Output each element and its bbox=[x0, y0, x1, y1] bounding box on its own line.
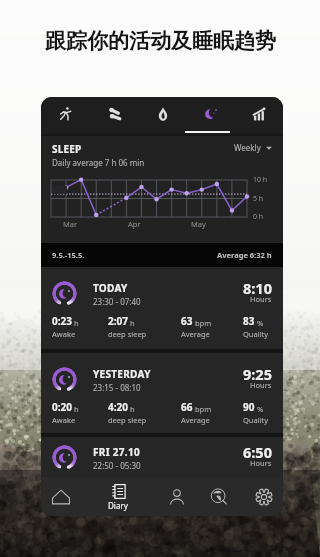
staticText: h bbox=[130, 318, 135, 328]
button[interactable]: Settings bbox=[242, 477, 283, 516]
button[interactable]: Exercise bbox=[90, 97, 139, 134]
staticText: Mar bbox=[63, 219, 78, 229]
staticText: 2:07 bbox=[108, 314, 128, 328]
button[interactable]: Explore bbox=[197, 477, 241, 516]
button[interactable]: YESTERDAY bbox=[41, 353, 283, 433]
staticText: bpm bbox=[195, 318, 212, 328]
staticText: 22:50 - 05:30 bbox=[93, 460, 141, 471]
staticText: Apr bbox=[128, 219, 141, 229]
staticText: 23:15 - 08:10 bbox=[93, 382, 141, 393]
staticText: Quality bbox=[243, 329, 269, 339]
staticText: 9:25 bbox=[243, 364, 272, 384]
staticText: % bbox=[257, 404, 264, 414]
staticText: 66 bbox=[181, 400, 193, 414]
staticText: Diary bbox=[108, 500, 128, 511]
staticText: deep sleep bbox=[108, 329, 147, 339]
staticText: 4:20 bbox=[108, 400, 128, 414]
staticText: 跟踪你的活动及睡眠趋势 bbox=[45, 28, 276, 54]
staticText: 90 bbox=[243, 400, 255, 414]
staticText: 5 h bbox=[253, 194, 264, 204]
button[interactable]: FRI 27.10 bbox=[41, 437, 283, 477]
staticText: h bbox=[130, 404, 135, 414]
button[interactable]: TODAY bbox=[41, 267, 283, 349]
staticText: Weekly bbox=[234, 142, 261, 153]
staticText: 10 h bbox=[253, 175, 268, 185]
button[interactable]: Profile bbox=[155, 477, 199, 516]
staticText: 0:23 bbox=[52, 314, 72, 328]
staticText: % bbox=[257, 318, 264, 328]
button[interactable]: Activity bbox=[41, 97, 90, 134]
staticText: deep sleep bbox=[108, 415, 147, 425]
staticText: Hours bbox=[250, 294, 272, 304]
staticText: 9.5.-15.5. bbox=[52, 250, 85, 260]
button[interactable]: Calories bbox=[139, 97, 187, 134]
staticText: Hours bbox=[250, 380, 272, 390]
staticText: Average 6:32 h bbox=[217, 250, 272, 260]
button[interactable]: Home bbox=[41, 477, 83, 516]
staticText: Awake bbox=[52, 329, 76, 339]
staticText: SLEEP bbox=[52, 142, 82, 156]
staticText: 8:10 bbox=[243, 278, 272, 298]
button[interactable]: Weekly bbox=[234, 142, 272, 153]
staticText: h bbox=[74, 404, 79, 414]
button[interactable]: Trends bbox=[235, 97, 283, 134]
staticText: 0 h bbox=[253, 212, 264, 222]
staticText: FRI 27.10 bbox=[93, 445, 140, 459]
staticText: Quality bbox=[243, 415, 269, 425]
staticText: TODAY bbox=[93, 281, 128, 295]
button[interactable]: Diary bbox=[96, 477, 140, 516]
staticText: Average bbox=[181, 329, 210, 339]
staticText: Hours bbox=[250, 458, 272, 468]
staticText: Average bbox=[181, 415, 210, 425]
button[interactable]: Sleep bbox=[187, 97, 235, 134]
staticText: May bbox=[191, 219, 206, 229]
staticText: bpm bbox=[195, 404, 212, 414]
staticText: h bbox=[74, 318, 79, 328]
staticText: 0:20 bbox=[52, 400, 72, 414]
staticText: Awake bbox=[52, 415, 76, 425]
staticText: 6:50 bbox=[243, 442, 272, 462]
staticText: 83 bbox=[243, 314, 255, 328]
staticText: 63 bbox=[181, 314, 193, 328]
staticText: YESTERDAY bbox=[93, 367, 151, 381]
staticText: Daily average 7 h 06 min bbox=[52, 157, 145, 168]
staticText: 23:30 - 07:40 bbox=[93, 296, 141, 307]
